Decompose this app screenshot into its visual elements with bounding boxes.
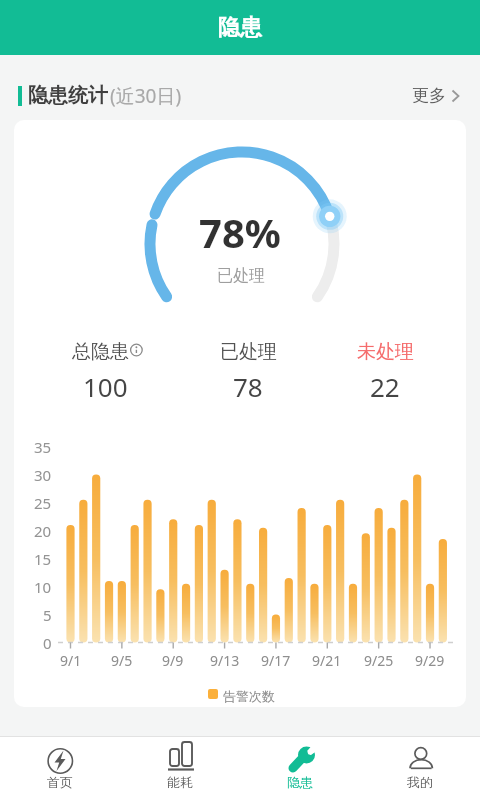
staticText: 78%: [199, 205, 281, 259]
staticText: 0: [43, 633, 52, 653]
staticText: 告警次数: [223, 688, 275, 704]
staticText: 100: [83, 369, 128, 404]
staticText: 9/9: [162, 651, 184, 670]
staticText: 9/21: [312, 651, 342, 670]
staticText: 30: [34, 465, 52, 485]
staticText: 隐患: [218, 14, 262, 42]
staticText: 未处理: [357, 340, 414, 364]
staticText: 已处理: [220, 340, 277, 364]
staticText: 隐患统计: [28, 83, 108, 108]
staticText: 25: [34, 493, 52, 513]
staticText: 15: [34, 549, 52, 569]
button[interactable]: 更多: [412, 85, 460, 106]
staticText: 9/13: [210, 651, 240, 670]
staticText: 9/29: [415, 651, 445, 670]
staticText: 20: [34, 521, 52, 541]
staticText: 我的: [407, 774, 433, 790]
staticText: 9/1: [60, 651, 82, 670]
staticText: 10: [34, 577, 52, 597]
button[interactable]: 隐患: [240, 737, 360, 800]
staticText: 5: [43, 605, 52, 625]
staticText: 35: [34, 437, 52, 457]
staticText: 更多: [412, 85, 446, 106]
staticText: 9/17: [261, 651, 291, 670]
staticText: 已处理: [217, 266, 265, 286]
staticText: 首页: [47, 774, 73, 790]
button[interactable]: 能耗: [120, 737, 240, 800]
staticText: 能耗: [167, 774, 193, 790]
button[interactable]: 首页: [0, 737, 120, 800]
staticText: 隐患: [287, 774, 313, 790]
staticText: 9/25: [364, 651, 394, 670]
staticText: 总隐患: [72, 340, 129, 364]
staticText: 22: [370, 369, 400, 404]
staticText: 78: [233, 369, 263, 404]
button[interactable]: 隐患: [0, 0, 480, 55]
button[interactable]: 我的: [360, 737, 480, 800]
staticText: 9/5: [111, 651, 133, 670]
staticText: (近30日): [110, 83, 182, 109]
